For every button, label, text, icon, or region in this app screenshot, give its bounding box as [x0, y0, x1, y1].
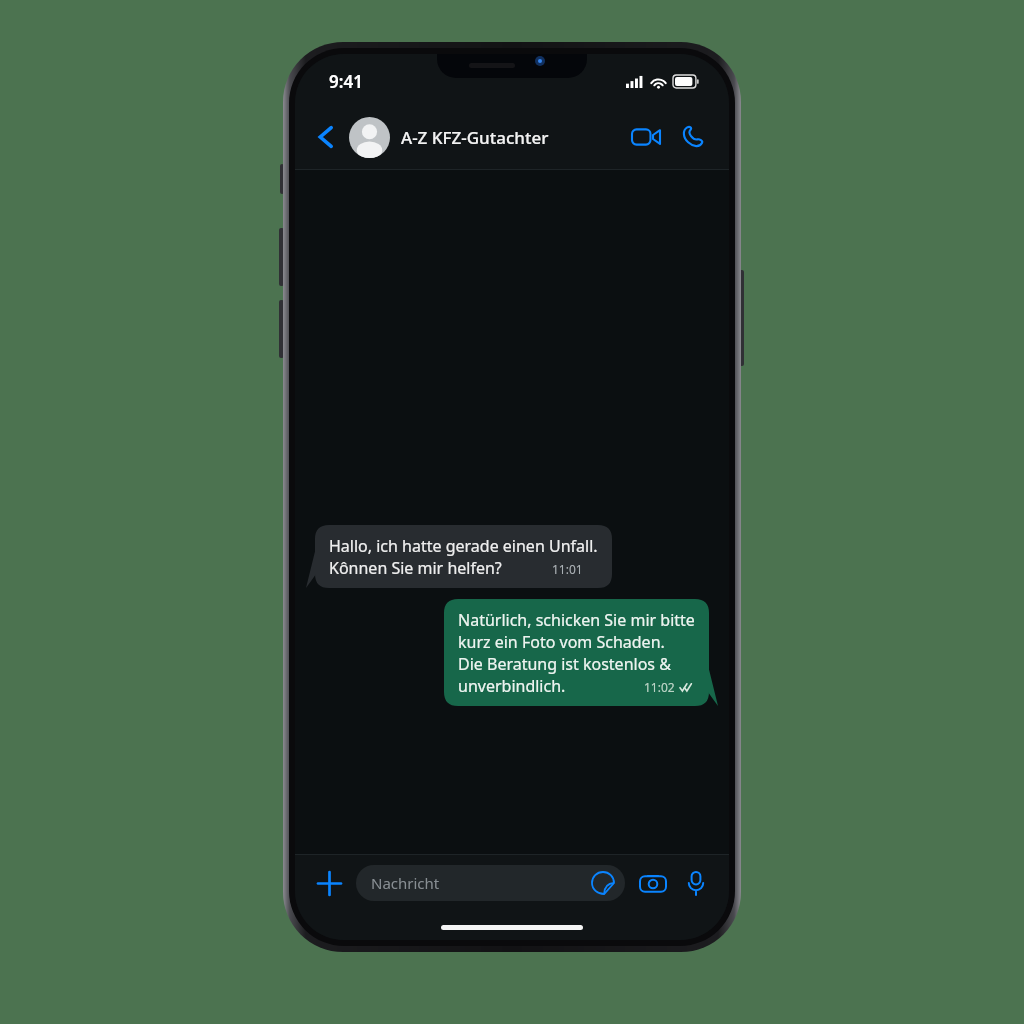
- staticText: unverbindlich.: [458, 675, 566, 697]
- button[interactable]: Natürlich, schicken Sie mir bitte: [444, 599, 718, 706]
- button[interactable]: Video call: [627, 118, 665, 156]
- button[interactable]: Stickers: [590, 870, 616, 896]
- staticText: A-Z KFZ-Gutachter: [401, 126, 549, 149]
- button[interactable]: Camera: [636, 866, 670, 900]
- button[interactable]: Voice call: [673, 118, 711, 156]
- staticText: Die Beratung ist kostenlos &: [458, 653, 671, 675]
- button[interactable]: Back: [307, 118, 345, 156]
- staticText: 11:02: [644, 679, 675, 695]
- button[interactable]: Nachricht: [356, 865, 625, 901]
- staticText: Nachricht: [371, 873, 440, 893]
- button[interactable]: A-Z KFZ-Gutachter: [401, 126, 627, 149]
- staticText: Hallo, ich hatte gerade einen Unfall.: [329, 535, 598, 557]
- staticText: 11:01: [552, 561, 583, 577]
- button[interactable]: Voice message: [679, 866, 713, 900]
- staticText: Kônnen Sie mir helfen?: [329, 557, 502, 579]
- staticText: kurz ein Foto vom Schaden.: [458, 631, 665, 653]
- button[interactable]: Hallo, ich hatte gerade einen Unfall.: [306, 525, 612, 588]
- staticText: Natürlich, schicken Sie mir bitte: [458, 609, 695, 631]
- staticText: 9:41: [329, 70, 363, 93]
- button[interactable]: Attach: [311, 865, 347, 901]
